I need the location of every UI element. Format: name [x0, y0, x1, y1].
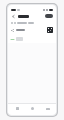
button[interactable]	[8, 35, 56, 43]
button[interactable]: Home	[10, 104, 24, 113]
button[interactable]: Back	[11, 14, 16, 19]
button[interactable]	[8, 25, 56, 35]
button[interactable]: Profile	[41, 104, 55, 113]
button[interactable]: Search	[25, 104, 39, 113]
button[interactable]: More options	[45, 14, 53, 18]
